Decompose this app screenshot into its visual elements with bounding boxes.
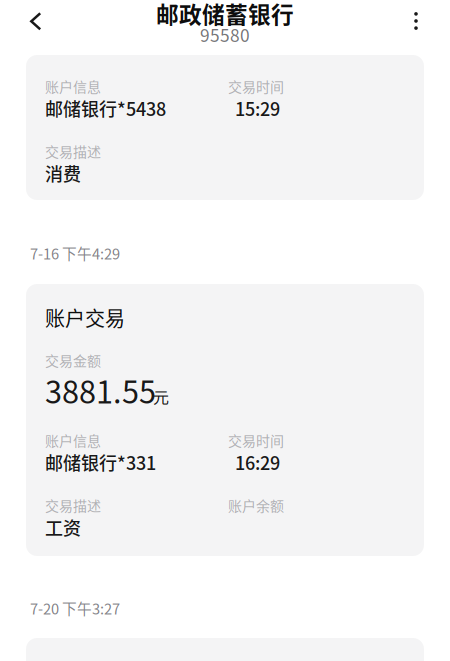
- staticText: 账户信息: [45, 76, 101, 96]
- staticText: 交易描述: [45, 495, 101, 515]
- staticText: 7-16 下午4:29: [30, 242, 120, 264]
- staticText: 15:29: [235, 95, 280, 121]
- button[interactable]: 账户信息: [26, 55, 424, 200]
- staticText: 邮储银行*331: [45, 449, 156, 475]
- staticText: 交易金额: [45, 350, 101, 370]
- staticText: 消费: [45, 160, 81, 186]
- staticText: 账户交易: [45, 303, 125, 332]
- staticText: 交易时间: [228, 76, 284, 96]
- staticText: 工资: [45, 514, 81, 540]
- staticText: 元: [153, 385, 169, 408]
- staticText: 邮储银行*5438: [45, 95, 166, 121]
- staticText: 7-20 下午3:27: [30, 597, 120, 619]
- button[interactable]: More options: [398, 0, 434, 42]
- staticText: 邮政储蓄银行: [156, 0, 294, 30]
- staticText: 95580: [200, 22, 250, 47]
- staticText: 交易时间: [228, 430, 284, 450]
- staticText: 3881.55: [45, 368, 156, 412]
- staticText: 账户余额: [228, 495, 284, 515]
- staticText: 16:29: [235, 449, 280, 475]
- staticText: 账户信息: [45, 430, 101, 450]
- button[interactable]: Back: [18, 0, 53, 43]
- staticText: 交易描述: [45, 141, 101, 161]
- button[interactable]: 账户交易: [26, 284, 424, 556]
